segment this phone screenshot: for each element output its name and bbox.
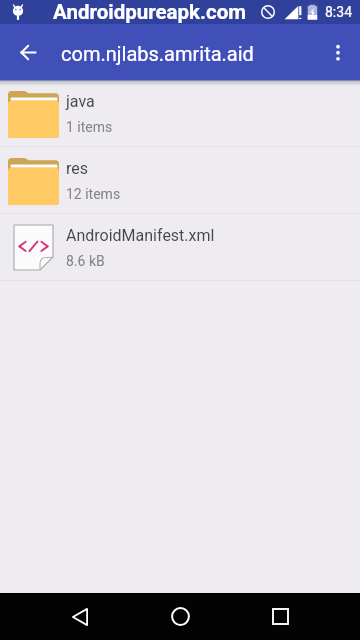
button[interactable]: Recents: [256, 593, 304, 640]
staticText: com.njlabs.amrita.aid: [61, 42, 254, 65]
staticText: res: [66, 159, 89, 178]
button[interactable]: java: [0, 80, 360, 147]
staticText: java: [66, 92, 95, 111]
staticText: Androidpureapk.com: [53, 0, 247, 24]
button[interactable]: Back: [0, 24, 56, 80]
staticText: 12 items: [66, 186, 121, 202]
button[interactable]: Home: [156, 593, 204, 640]
button[interactable]: More options: [312, 24, 360, 80]
staticText: AndroidManifest.xml: [66, 226, 215, 245]
staticText: 8:34: [325, 4, 352, 20]
button[interactable]: Back: [56, 593, 104, 640]
staticText: 1 items: [66, 119, 113, 135]
staticText: 8.6 kB: [66, 253, 105, 269]
button[interactable]: AndroidManifest.xml: [0, 214, 360, 281]
button[interactable]: res: [0, 147, 360, 214]
